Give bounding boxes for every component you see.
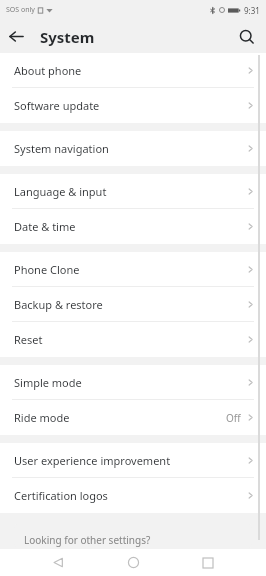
staticText: About phone [14, 63, 82, 78]
button[interactable]: Phone Clone [0, 252, 266, 287]
staticText: Looking for other settings? [24, 533, 151, 547]
staticText: Reset [14, 332, 43, 347]
button[interactable]: Backup & restore [0, 287, 266, 322]
staticText: Software update [14, 98, 100, 113]
staticText: Certification logos [14, 488, 108, 503]
staticText: Simple mode [14, 375, 82, 390]
button[interactable]: System navigation [0, 131, 266, 166]
staticText: 9:31 [244, 5, 260, 16]
button[interactable]: Home [116, 549, 150, 576]
staticText: Language & input [14, 184, 107, 199]
button[interactable]: Software update [0, 88, 266, 123]
button[interactable]: User experience improvement [0, 443, 266, 478]
staticText: Off [226, 411, 241, 425]
staticText: Phone Clone [14, 262, 80, 277]
button[interactable]: Search [230, 20, 263, 53]
button[interactable]: Date & time [0, 209, 266, 244]
staticText: Ride mode [14, 410, 70, 425]
staticText: Backup & restore [14, 297, 103, 312]
button[interactable]: Simple mode [0, 365, 266, 400]
button[interactable]: Back [41, 549, 75, 576]
button[interactable]: Certification logos [0, 478, 266, 513]
button[interactable]: Recents [191, 549, 225, 576]
staticText: SOS only [6, 5, 35, 15]
staticText: System navigation [14, 141, 109, 156]
button[interactable]: About phone [0, 53, 266, 88]
button[interactable]: Language & input [0, 174, 266, 209]
button[interactable]: Back [0, 20, 33, 53]
staticText: Date & time [14, 219, 76, 234]
button[interactable]: Reset [0, 322, 266, 357]
staticText: User experience improvement [14, 453, 171, 468]
staticText: System [40, 27, 95, 47]
button[interactable]: Ride mode [0, 400, 266, 435]
